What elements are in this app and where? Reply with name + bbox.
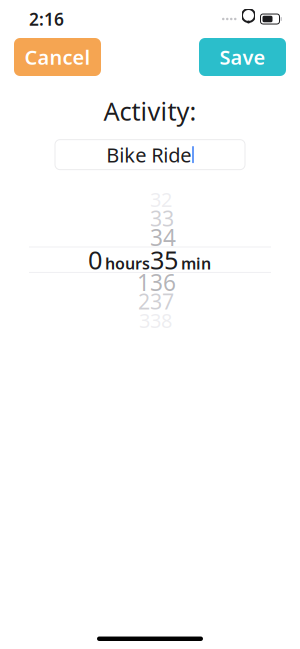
- staticText: 2: [138, 287, 150, 315]
- staticText: 35: [150, 243, 178, 276]
- staticText: 34: [150, 222, 176, 252]
- staticText: Bike Ride: [106, 141, 191, 168]
- button[interactable]: Bike Ride: [55, 140, 245, 170]
- staticText: hours: [105, 253, 150, 274]
- staticText: 38: [150, 307, 172, 333]
- staticText: 36: [150, 267, 176, 297]
- staticText: 1: [137, 267, 150, 297]
- staticText: min: [181, 253, 211, 274]
- staticText: Cancel: [24, 44, 90, 70]
- staticText: 2:16: [29, 7, 64, 30]
- staticText: 3: [139, 307, 150, 333]
- button[interactable]: Save: [199, 38, 286, 76]
- staticText: Save: [219, 44, 265, 70]
- staticText: 32: [150, 186, 172, 212]
- button[interactable]: Cancel: [14, 38, 101, 76]
- staticText: 0: [88, 243, 102, 276]
- staticText: 33: [150, 204, 174, 232]
- staticText: Activity:: [103, 94, 196, 128]
- staticText: 37: [150, 287, 174, 315]
